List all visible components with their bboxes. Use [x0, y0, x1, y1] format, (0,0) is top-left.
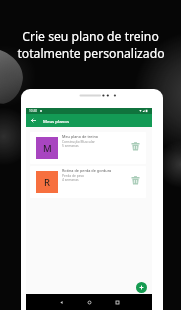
button[interactable]: Back: [26, 114, 41, 127]
button[interactable]: Delete: [129, 174, 141, 186]
button[interactable]: Delete: [129, 140, 141, 152]
button[interactable]: Back: [56, 297, 66, 307]
staticText: 5 semanas: [62, 143, 79, 147]
staticText: 4 semanas: [62, 177, 79, 181]
button[interactable]: R: [30, 166, 146, 198]
staticText: R: [44, 176, 51, 189]
staticText: Crie seu plano de treino: [22, 28, 159, 45]
staticText: Construção Muscular: [62, 139, 95, 143]
staticText: Meus planos: [43, 118, 69, 124]
staticText: Rotina de perda de gordura: [62, 168, 112, 173]
staticText: Meu plano de treino: [62, 134, 99, 139]
staticText: 10:30: [29, 109, 38, 113]
button[interactable]: Recents: [112, 297, 122, 307]
button[interactable]: M: [30, 132, 146, 164]
button[interactable]: Add plan: [136, 282, 147, 293]
staticText: totalmente personalizado: [17, 45, 165, 62]
staticText: M: [43, 142, 52, 155]
staticText: Perda de peso: [62, 173, 85, 177]
button[interactable]: Home: [84, 297, 94, 307]
